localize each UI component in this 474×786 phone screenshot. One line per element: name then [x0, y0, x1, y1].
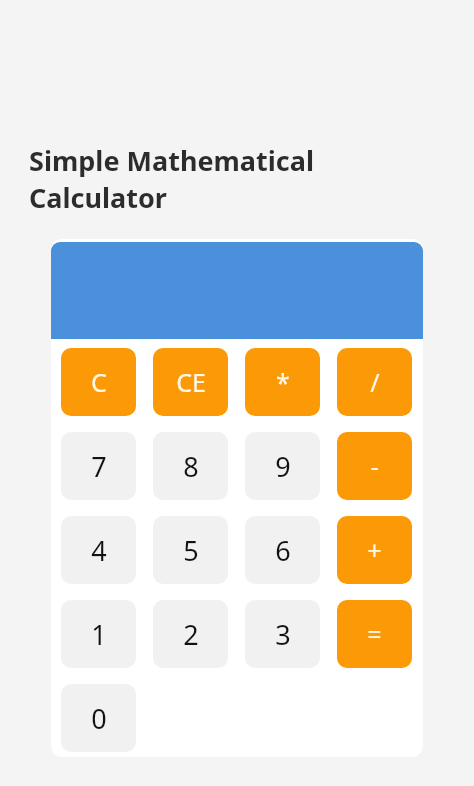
staticText: 4 — [91, 532, 107, 569]
button[interactable]: 3 — [245, 600, 320, 668]
button[interactable]: CE — [153, 348, 228, 416]
button[interactable]: - — [337, 432, 412, 500]
staticText: 5 — [183, 532, 199, 569]
staticText: CE — [176, 365, 206, 399]
button[interactable]: * — [245, 348, 320, 416]
button[interactable]: / — [337, 348, 412, 416]
staticText: 9 — [275, 448, 291, 485]
staticText: / — [370, 365, 380, 399]
button[interactable]: 4 — [61, 516, 136, 584]
button[interactable]: 6 — [245, 516, 320, 584]
staticText: + — [367, 533, 382, 567]
button[interactable]: 1 — [61, 600, 136, 668]
button[interactable]: 5 — [153, 516, 228, 584]
staticText: 2 — [183, 616, 199, 653]
button[interactable]: Display — [51, 242, 423, 339]
staticText: 1 — [91, 616, 107, 653]
staticText: * — [276, 365, 290, 399]
button[interactable]: = — [337, 600, 412, 668]
button[interactable]: 9 — [245, 432, 320, 500]
staticText: 6 — [275, 532, 291, 569]
staticText: 7 — [91, 448, 107, 485]
button[interactable]: 8 — [153, 432, 228, 500]
button[interactable]: 0 — [61, 684, 136, 752]
staticText: - — [370, 449, 379, 483]
button[interactable]: + — [337, 516, 412, 584]
button[interactable]: 7 — [61, 432, 136, 500]
staticText: 8 — [183, 448, 199, 485]
staticText: 0 — [91, 700, 107, 737]
button[interactable]: C — [61, 348, 136, 416]
button[interactable]: 2 — [153, 600, 228, 668]
staticText: 3 — [275, 616, 291, 653]
staticText: C — [91, 365, 107, 399]
staticText: = — [367, 617, 382, 651]
staticText: Simple Mathematical Calculator — [29, 142, 458, 216]
